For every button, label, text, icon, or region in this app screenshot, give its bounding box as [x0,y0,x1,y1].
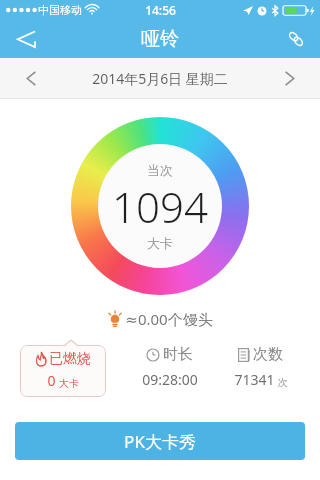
staticText: 已燃烧 [49,350,91,368]
staticText: 哑铃 [141,27,179,51]
button[interactable]: Previous day [0,58,62,98]
button[interactable]: Next day [258,58,320,98]
button[interactable]: 次数 [215,345,306,389]
staticText: PK大卡秀 [124,430,196,453]
staticText: 次数 [253,345,283,364]
staticText: 时长 [163,345,193,364]
staticText: 当次 [147,162,173,178]
staticText: 0 [47,371,56,390]
staticText: 次 [278,376,288,389]
staticText: ≈0.00个馒头 [125,309,213,329]
staticText: 1094 [112,178,208,235]
button[interactable]: Link [272,20,320,58]
staticText: 14:56 [145,2,176,18]
staticText: 71341 [234,370,275,389]
staticText: 09:28:00 [142,370,198,389]
button[interactable]: PK大卡秀 [15,422,305,460]
button[interactable]: 已燃烧 [20,345,106,397]
button[interactable]: 时长 [124,345,215,389]
button[interactable]: Back [0,20,52,58]
staticText: 大卡 [147,235,173,251]
staticText: 大卡 [59,377,79,390]
staticText: 中国移动 [38,3,82,17]
staticText: 2014年5月6日 星期二 [92,69,228,88]
